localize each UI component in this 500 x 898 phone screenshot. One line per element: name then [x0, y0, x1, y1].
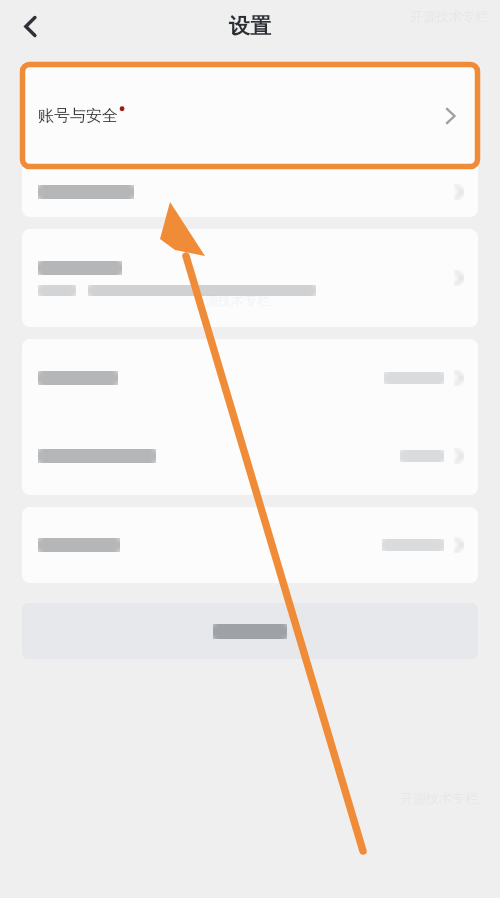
- button[interactable]: 账号与安全: [22, 64, 478, 167]
- button[interactable]: [22, 339, 478, 417]
- button[interactable]: [22, 603, 478, 659]
- button[interactable]: [22, 417, 478, 495]
- button[interactable]: [22, 507, 478, 583]
- button[interactable]: [22, 167, 478, 217]
- staticText: 开源技术专栏: [192, 292, 270, 308]
- button[interactable]: 返回: [10, 6, 50, 46]
- staticText: 账号与安全: [38, 106, 118, 126]
- staticText: 设置: [229, 13, 271, 39]
- button[interactable]: [22, 229, 478, 327]
